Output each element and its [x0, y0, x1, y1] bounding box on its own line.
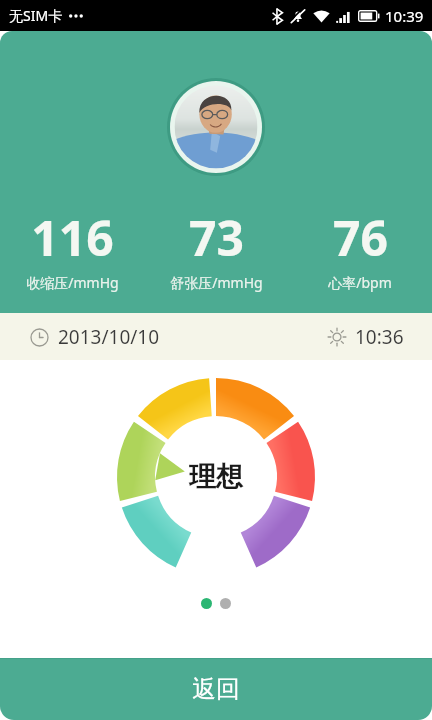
staticText: 无SIM卡: [9, 6, 63, 25]
staticText: 理想: [189, 460, 243, 494]
staticText: 舒张压/mmHg: [170, 273, 263, 292]
staticText: 116: [31, 205, 114, 270]
staticText: 10:39: [385, 6, 424, 26]
staticText: 心率/bpm: [328, 273, 392, 292]
staticText: 73: [189, 205, 244, 270]
staticText: 2013/10/10: [58, 324, 160, 350]
staticText: 76: [333, 205, 388, 270]
staticText: 返回: [192, 674, 240, 704]
staticText: 10:36: [355, 324, 404, 350]
button[interactable]: 返回: [0, 658, 432, 720]
staticText: 收缩压/mmHg: [26, 273, 119, 292]
